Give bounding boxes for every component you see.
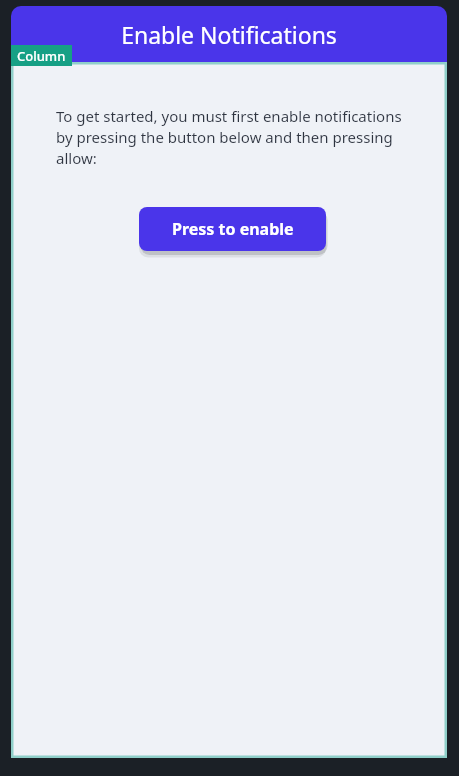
- button[interactable]: Press to enable: [139, 207, 326, 251]
- staticText: To get started, you must first enable no…: [56, 106, 419, 169]
- staticText: Enable Notifications: [11, 19, 447, 50]
- staticText: Press to enable: [172, 218, 294, 240]
- other: Column inspector label: [17, 45, 66, 66]
- staticText: Column: [17, 47, 66, 65]
